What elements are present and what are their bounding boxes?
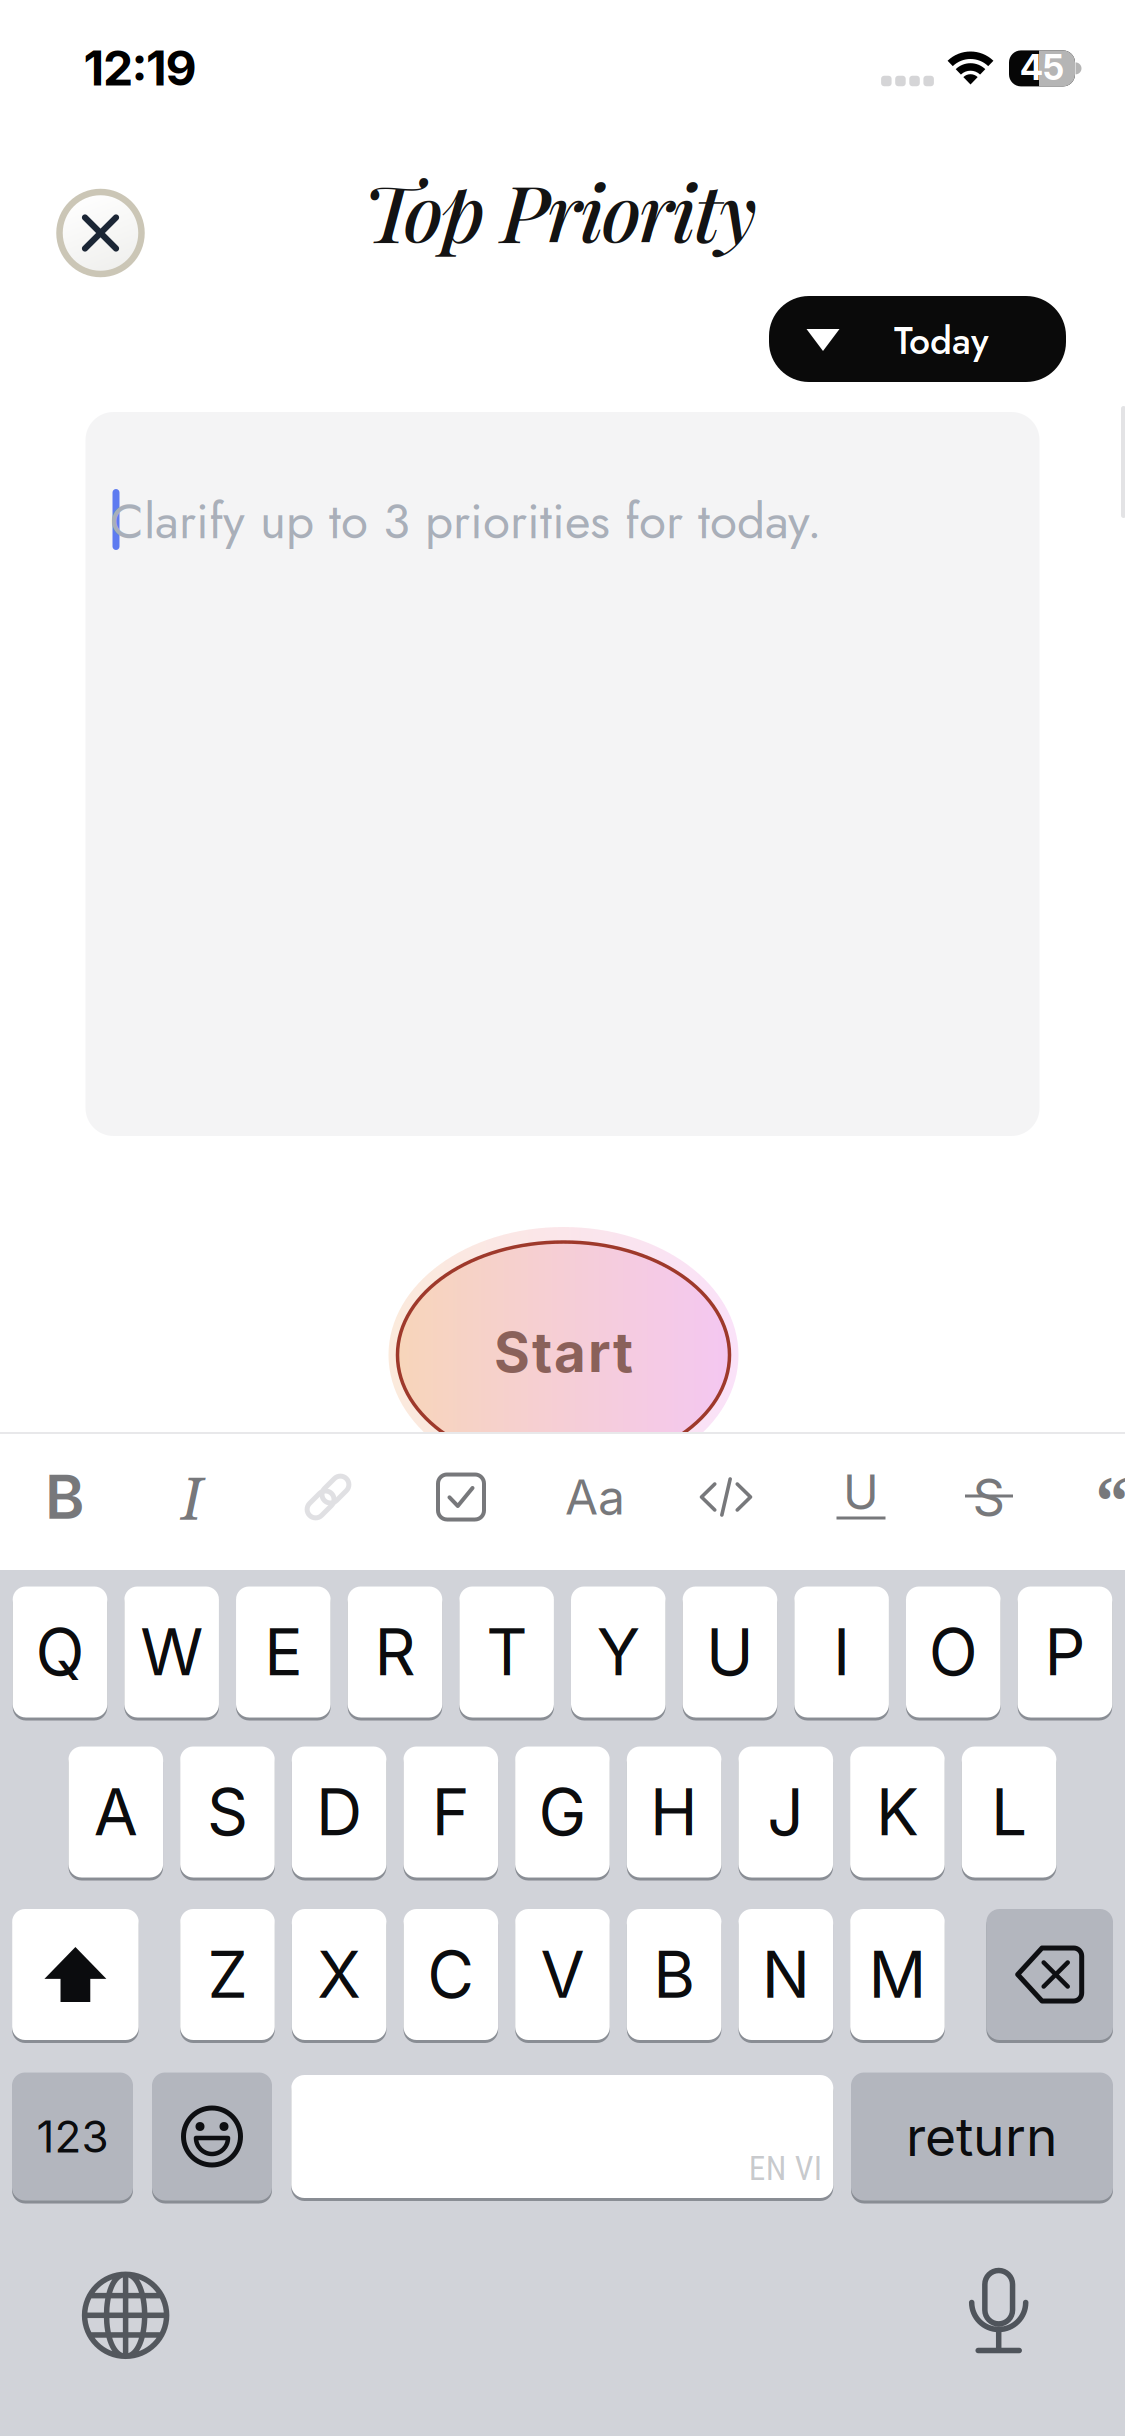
button[interactable]: M: [850, 1907, 945, 2041]
staticText: return: [906, 2104, 1058, 2169]
staticText: W: [140, 1613, 203, 1691]
button[interactable]: Bold: [15, 1447, 115, 1547]
button[interactable]: L: [962, 1745, 1056, 1879]
staticText: M: [868, 1936, 926, 2013]
staticText: G: [538, 1773, 586, 1851]
staticText: Clarify up to 3 priorities for today.: [110, 485, 822, 557]
staticText: I: [181, 1457, 203, 1537]
button[interactable]: Z: [180, 1907, 275, 2041]
staticText: Q: [35, 1613, 84, 1691]
button[interactable]: T: [459, 1585, 554, 1719]
button[interactable]: F: [403, 1745, 498, 1879]
staticText: H: [650, 1773, 698, 1851]
button[interactable]: Today: [769, 296, 1066, 382]
staticText: EN VI: [749, 2149, 822, 2188]
staticText: F: [432, 1773, 470, 1851]
staticText: K: [876, 1773, 919, 1851]
staticText: Start: [494, 1319, 633, 1385]
button[interactable]: return: [851, 2071, 1113, 2202]
button[interactable]: R: [348, 1585, 442, 1719]
button[interactable]: U: [683, 1585, 777, 1719]
button[interactable]: X: [292, 1907, 386, 2041]
staticText: A: [94, 1773, 138, 1851]
button[interactable]: P: [1018, 1585, 1112, 1719]
button[interactable]: K: [850, 1745, 945, 1879]
staticText: J: [767, 1773, 804, 1851]
button[interactable]: Dictation: [939, 2252, 1059, 2372]
staticText: B: [45, 1461, 85, 1533]
button[interactable]: V: [515, 1907, 610, 2041]
button[interactable]: N: [738, 1907, 833, 2041]
staticText: Z: [207, 1936, 247, 2013]
staticText: E: [264, 1613, 302, 1691]
button[interactable]: C: [403, 1907, 498, 2041]
staticText: U: [706, 1613, 754, 1691]
button[interactable]: Start: [388, 1227, 738, 1483]
button[interactable]: D: [292, 1745, 386, 1879]
staticText: “: [1095, 1453, 1125, 1547]
button[interactable]: Code: [676, 1447, 776, 1547]
staticText: P: [1044, 1613, 1085, 1691]
button[interactable]: H: [627, 1745, 721, 1879]
staticText: C: [427, 1936, 474, 2013]
staticText: Aa: [565, 1468, 625, 1526]
button[interactable]: G: [515, 1745, 610, 1879]
button[interactable]: Delete: [986, 1907, 1113, 2041]
button[interactable]: Checklist: [411, 1447, 511, 1547]
button[interactable]: Underline: [811, 1447, 911, 1547]
staticText: O: [929, 1613, 978, 1691]
staticText: D: [316, 1773, 362, 1851]
staticText: B: [653, 1936, 695, 2013]
button[interactable]: E: [236, 1585, 331, 1719]
button[interactable]: Shift: [12, 1907, 139, 2041]
button[interactable]: Text style: [545, 1447, 645, 1547]
staticText: L: [991, 1773, 1027, 1851]
staticText: N: [762, 1936, 810, 2013]
button[interactable]: Y: [571, 1585, 666, 1719]
button[interactable]: Strikethrough: [939, 1447, 1039, 1547]
button[interactable]: Q: [13, 1585, 107, 1719]
button[interactable]: B: [627, 1907, 721, 2041]
button[interactable]: J: [738, 1745, 833, 1879]
staticText: Top Priority: [363, 158, 757, 262]
button[interactable]: Next keyboard: [66, 2255, 186, 2375]
staticText: U: [843, 1463, 879, 1521]
staticText: 12:19: [83, 39, 196, 97]
staticText: Today: [894, 314, 989, 368]
button[interactable]: Insert link: [278, 1447, 378, 1547]
button[interactable]: S: [180, 1745, 275, 1879]
button[interactable]: Italic: [142, 1447, 242, 1547]
button[interactable]: 123: [12, 2071, 133, 2202]
staticText: 45: [1020, 46, 1064, 88]
staticText: V: [540, 1936, 584, 2013]
button[interactable]: Close: [59, 192, 141, 274]
staticText: Y: [597, 1613, 640, 1691]
button[interactable]: Quote: [1062, 1450, 1125, 1550]
staticText: X: [317, 1936, 361, 2013]
button[interactable]: Space: [291, 2073, 833, 2199]
staticText: T: [486, 1613, 527, 1691]
staticText: S: [207, 1773, 248, 1851]
staticText: R: [374, 1613, 415, 1691]
staticText: S: [972, 1466, 1005, 1528]
button[interactable]: O: [906, 1585, 1001, 1719]
staticText: I: [833, 1613, 850, 1691]
button[interactable]: A: [68, 1745, 163, 1879]
button[interactable]: Emoji: [152, 2071, 272, 2202]
button[interactable]: I: [794, 1585, 889, 1719]
button[interactable]: W: [124, 1585, 219, 1719]
staticText: 123: [36, 2110, 108, 2163]
